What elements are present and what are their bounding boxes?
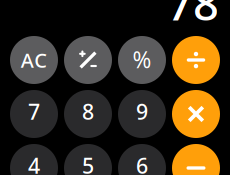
button[interactable]: 4 (10, 144, 58, 175)
staticText: 6 (136, 151, 148, 175)
button[interactable]: Multiply (172, 90, 220, 138)
button[interactable]: 6 (118, 144, 166, 175)
button[interactable]: 5 (64, 144, 112, 175)
button[interactable]: A (10, 36, 58, 84)
staticText: 7 (28, 97, 40, 126)
staticText: 4 (28, 151, 40, 175)
button[interactable]: Divide (172, 36, 220, 84)
button[interactable]: % (118, 36, 166, 84)
staticText: A (21, 47, 34, 73)
staticText: % (132, 44, 151, 74)
button[interactable]: 8 (64, 90, 112, 138)
staticText: C (34, 47, 47, 73)
staticText: 5 (82, 151, 94, 175)
staticText: 8 (82, 97, 94, 126)
staticText: 9 (136, 97, 148, 126)
button[interactable]: Plus minus (64, 36, 112, 84)
staticText: 78 (167, 0, 219, 33)
button[interactable]: 7 (10, 90, 58, 138)
button[interactable]: Minus (172, 144, 220, 175)
button[interactable]: 9 (118, 90, 166, 138)
